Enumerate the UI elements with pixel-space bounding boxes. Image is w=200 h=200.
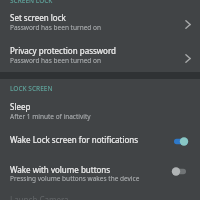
staticText: Launch Camera [10,194,69,200]
staticText: Password has been turned on [10,23,101,32]
staticText: Sleep [10,101,31,112]
staticText: LOCK SCREEN [10,84,53,93]
button[interactable]: Privacy protection password [0,40,200,72]
button[interactable]: Sleep [0,96,200,126]
staticText: Password has been turned on [10,56,101,65]
staticText: Wake Lock screen for notifications [10,134,139,145]
staticText: Privacy protection password [10,45,116,56]
staticText: Set screen lock [10,12,66,23]
staticText: SCREEN LOCK [10,0,53,5]
staticText: Pressing volume buttons wakes the device [10,174,140,183]
button[interactable]: Set screen lock [0,7,200,39]
button[interactable]: Wake with volume buttons [0,158,200,188]
button[interactable]: Wake Lock screen for notifications [0,128,200,154]
staticText: After 1 minute of inactivity [10,112,91,121]
staticText: Wake with volume buttons [10,164,111,175]
